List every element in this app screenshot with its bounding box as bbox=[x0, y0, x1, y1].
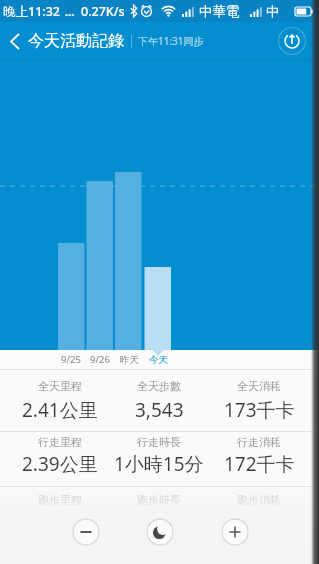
staticText: 2.39公里 bbox=[22, 451, 98, 477]
button[interactable] bbox=[146, 518, 174, 546]
staticText: 9/25 bbox=[61, 353, 81, 366]
staticText: 173千卡 bbox=[224, 397, 295, 423]
staticText: 0.27K/s bbox=[81, 3, 125, 20]
staticText: 行走里程 bbox=[38, 435, 82, 449]
staticText: 2.41公里 bbox=[22, 397, 98, 423]
staticText: 今天活動記錄 bbox=[28, 31, 124, 51]
button[interactable]: 9/26 bbox=[80, 350, 120, 369]
button[interactable] bbox=[221, 518, 249, 546]
button[interactable]: 今天 bbox=[138, 350, 178, 369]
staticText: 今天 bbox=[149, 354, 168, 366]
staticText: 9/26 bbox=[90, 353, 110, 366]
button[interactable] bbox=[72, 518, 100, 546]
staticText: 172千卡 bbox=[224, 451, 295, 477]
staticText: 全天里程 bbox=[38, 379, 82, 393]
staticText: 全天消耗 bbox=[237, 379, 281, 393]
staticText: 跑步里程 bbox=[38, 493, 82, 507]
staticText: 1小時15分 bbox=[114, 451, 204, 477]
staticText: 中華電信 bbox=[266, 3, 288, 20]
staticText: 跑步時長 bbox=[137, 493, 181, 507]
button[interactable]: 昨天 bbox=[109, 350, 149, 369]
staticText: 晚上11:32 bbox=[3, 3, 61, 20]
button[interactable] bbox=[0, 22, 28, 60]
staticText: 跑步消耗 bbox=[237, 493, 281, 507]
staticText: 中華電信 bbox=[199, 3, 245, 20]
staticText: … bbox=[65, 4, 75, 19]
staticText: 行走消耗 bbox=[237, 435, 281, 449]
staticText: 昨天 bbox=[120, 354, 139, 366]
button[interactable]: 9/25 bbox=[51, 350, 91, 369]
staticText: 行走時長 bbox=[137, 435, 181, 449]
staticText: 全天步數 bbox=[137, 379, 181, 393]
button[interactable] bbox=[273, 22, 311, 60]
staticText: 3,543 bbox=[135, 397, 184, 423]
staticText: 下午11:31同步 bbox=[138, 34, 204, 48]
